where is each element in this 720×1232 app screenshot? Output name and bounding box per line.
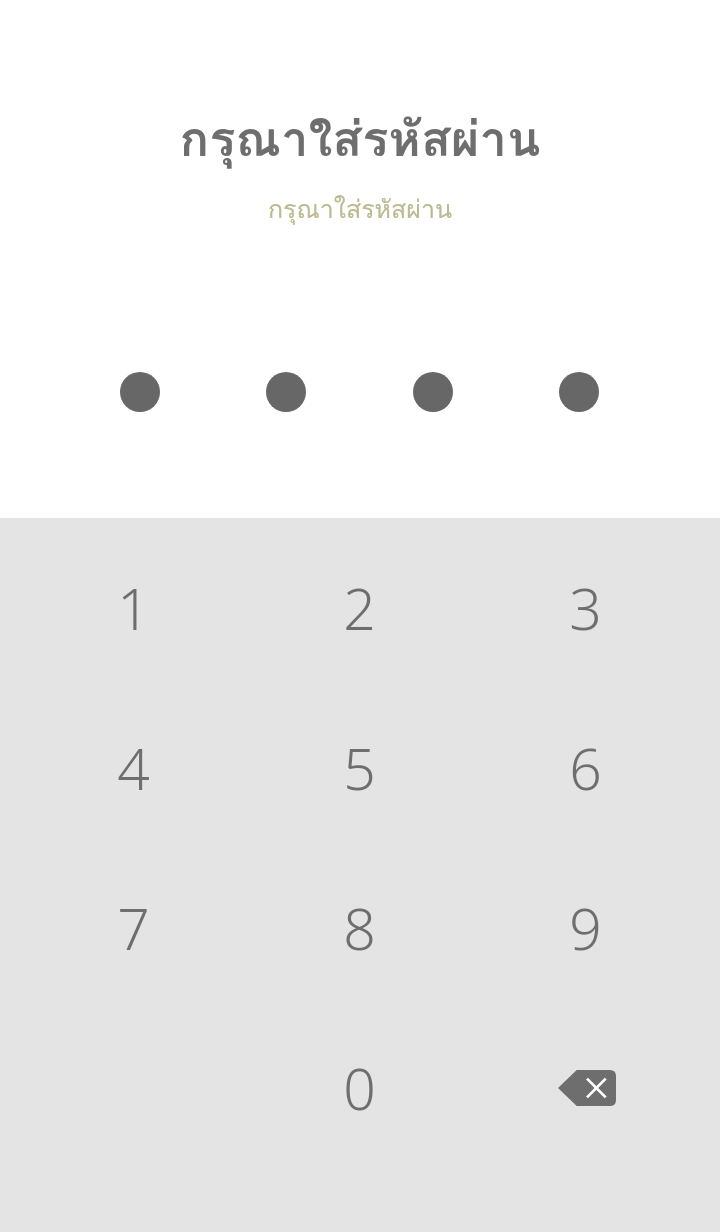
staticText: 3 (569, 569, 602, 647)
button[interactable]: 1 (20, 528, 246, 688)
button[interactable]: Backspace (472, 1008, 698, 1168)
button[interactable]: 9 (472, 848, 698, 1008)
button[interactable]: 4 (20, 688, 246, 848)
staticText: 9 (569, 889, 602, 967)
button[interactable]: 3 (472, 528, 698, 688)
button[interactable]: 2 (246, 528, 472, 688)
staticText: 0 (343, 1049, 376, 1127)
staticText: 8 (343, 889, 376, 967)
staticText: 1 (117, 569, 150, 647)
staticText: 5 (343, 729, 376, 807)
staticText: กรุณาใส่รหัสผ่าน (0, 100, 720, 178)
button[interactable]: 5 (246, 688, 472, 848)
button[interactable]: 0 (246, 1008, 472, 1168)
button[interactable]: 8 (246, 848, 472, 1008)
staticText: 6 (569, 729, 602, 807)
staticText: 7 (117, 889, 150, 967)
staticText: 4 (117, 729, 150, 807)
button[interactable]: 6 (472, 688, 698, 848)
staticText: 2 (343, 569, 376, 647)
button[interactable]: 7 (20, 848, 246, 1008)
staticText: กรุณาใส่รหัสผ่าน (0, 189, 720, 229)
